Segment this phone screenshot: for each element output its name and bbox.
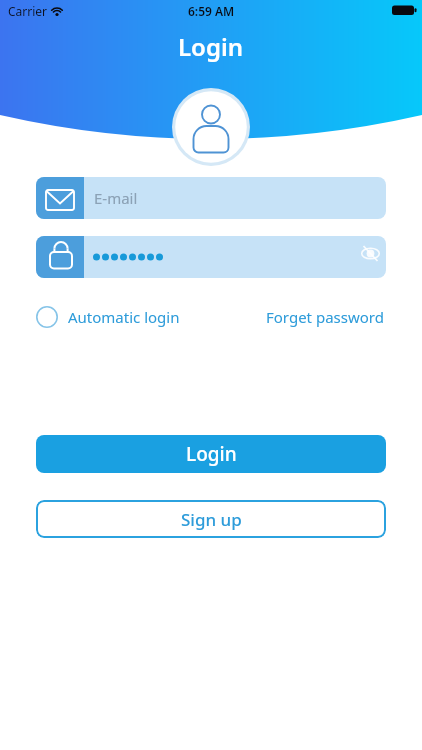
button[interactable]: Login xyxy=(36,435,386,473)
button[interactable]: E-mail xyxy=(36,177,386,219)
button[interactable]: Sign up xyxy=(36,500,386,538)
staticText: Carrier xyxy=(8,3,48,19)
button[interactable]: Automatic login xyxy=(36,306,180,328)
button[interactable]: Forget password xyxy=(266,307,384,327)
button[interactable] xyxy=(36,236,386,278)
staticText: Login xyxy=(186,441,237,467)
staticText: 6:59 AM xyxy=(188,3,235,19)
staticText: Login xyxy=(178,30,244,63)
staticText: Sign up xyxy=(181,508,242,531)
staticText: E-mail xyxy=(94,188,138,208)
staticText: Automatic login xyxy=(68,307,180,327)
